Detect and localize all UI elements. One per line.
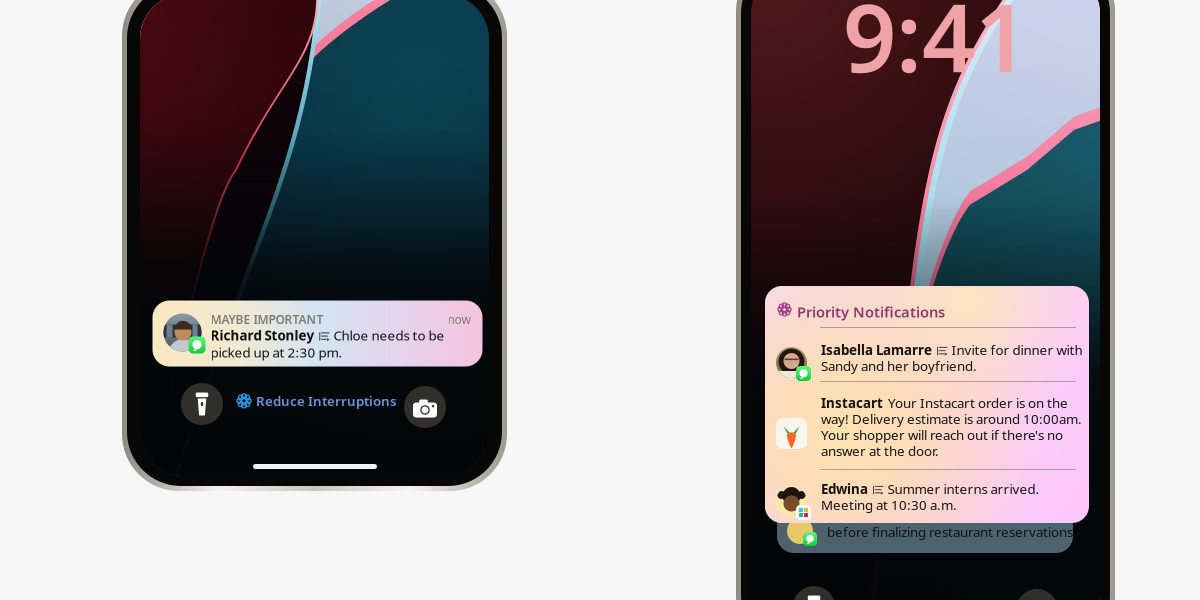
staticText: Richard Stonley — [210, 326, 314, 344]
staticText: 9:41 — [843, 0, 1028, 98]
staticText: Your shopper will reach out if there's n… — [821, 426, 1063, 444]
staticText: Chloe needs to be — [333, 326, 444, 344]
staticText: picked up at 2:30 pm. — [210, 343, 342, 361]
button[interactable]: Priority Notifications — [765, 286, 1089, 523]
staticText: Priority Notifications — [797, 302, 945, 321]
button[interactable]: Flashlight — [181, 383, 223, 425]
button[interactable]: Camera — [404, 386, 446, 428]
staticText: answer at the door. — [821, 442, 939, 460]
button[interactable]: Camera — [1016, 589, 1058, 600]
staticText: way! Delivery estimate is around 10:00am… — [821, 410, 1082, 428]
staticText: Summer interns arrived. — [888, 480, 1040, 498]
staticText: now — [447, 311, 470, 327]
staticText: before finalizing restaurant reservation… — [827, 523, 1077, 541]
button[interactable]: Reduce Interruptions — [236, 392, 397, 410]
staticText: Invite for dinner with — [952, 341, 1083, 359]
staticText: Your Instacart order is on the — [888, 394, 1068, 412]
button[interactable]: Flashlight — [793, 586, 835, 600]
button[interactable]: MAYBE IMPORTANT — [152, 300, 482, 366]
staticText: Edwina — [821, 480, 868, 498]
staticText: Meeting at 10:30 a.m. — [821, 496, 957, 514]
staticText: Sandy and her boyfriend. — [821, 357, 977, 375]
staticText: Reduce Interruptions — [256, 392, 397, 410]
staticText: Instacart — [821, 394, 883, 412]
staticText: MAYBE IMPORTANT — [210, 311, 323, 327]
staticText: Isabella Lamarre — [821, 341, 932, 359]
